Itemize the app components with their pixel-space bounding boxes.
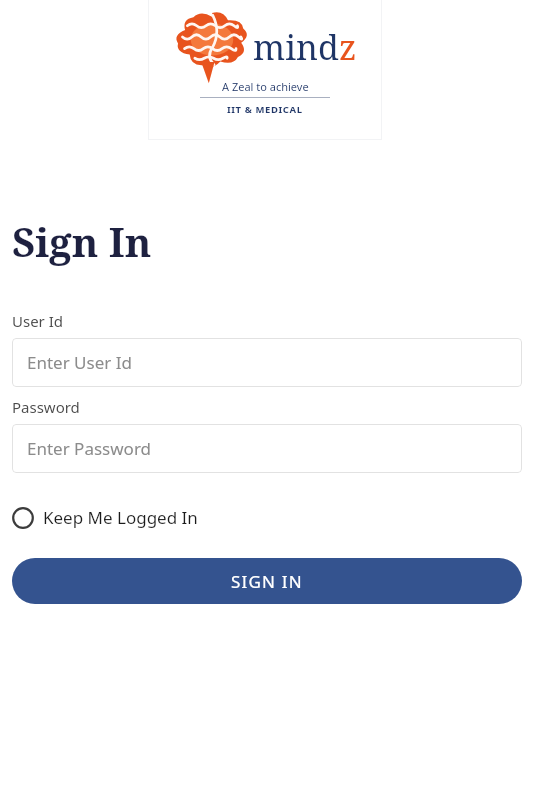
staticText: Sign In — [12, 214, 152, 268]
staticText: A Zeal to achieve — [222, 79, 309, 94]
staticText: Password — [12, 397, 80, 417]
staticText: User Id — [12, 311, 64, 331]
other: Mindz logo — [173, 10, 251, 84]
staticText: Enter User Id — [27, 351, 132, 374]
staticText: Enter Password — [27, 437, 152, 460]
button[interactable]: Keep Me Logged In — [12, 502, 198, 533]
staticText: IIT & MEDICAL — [227, 103, 303, 116]
button[interactable]: SIGN IN — [12, 558, 522, 604]
staticText: mind — [253, 24, 339, 70]
button[interactable]: Enter User Id — [12, 338, 522, 387]
staticText: SIGN IN — [231, 570, 303, 593]
staticText: Keep Me Logged In — [43, 506, 198, 529]
staticText: z — [339, 24, 357, 70]
button[interactable]: Enter Password — [12, 424, 522, 473]
